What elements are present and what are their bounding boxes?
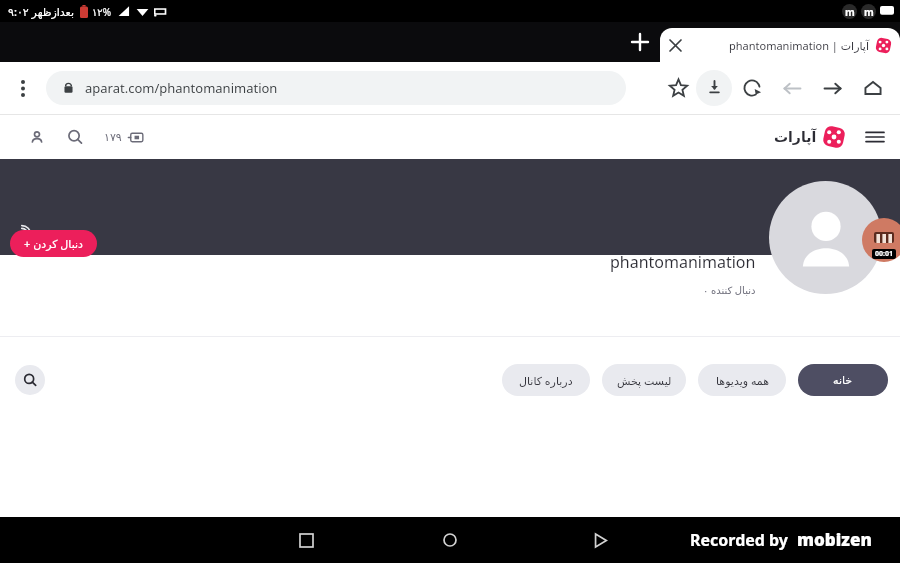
button[interactable]: aparat.com/phantomanimation [46,71,626,105]
staticText: لیست پخش [617,373,672,388]
button[interactable]: Account [22,122,52,152]
button[interactable]: ۱۷۹ [104,131,144,144]
button[interactable]: Recents [288,522,324,558]
button[interactable]: Bookmark [660,70,696,106]
staticText: m [864,5,874,19]
button[interactable]: درباره کانال [502,364,590,396]
button[interactable]: Close tab [660,28,900,62]
staticText: ۹:۰۲ بعدازظهر [8,4,74,19]
button[interactable]: همه ویدیوها [698,364,786,396]
button[interactable]: Search [60,122,90,152]
button[interactable]: Home [432,522,468,558]
staticText: آپارات [774,129,817,145]
staticText: ۱۷۹ [104,131,122,144]
button[interactable]: Mobizen recorder [862,218,900,262]
button[interactable]: Reload [732,68,772,108]
staticText: 00:01 [875,249,893,259]
button[interactable]: RSS feed [12,221,36,245]
button[interactable]: New tab [620,22,660,62]
button[interactable]: خانه [798,364,888,396]
button[interactable]: Back [772,68,812,108]
button[interactable]: Forward [812,68,852,108]
staticText: همه ویدیوها [716,373,769,388]
button[interactable]: Back [582,522,618,558]
button[interactable]: More options [0,65,46,111]
staticText: phantomanimation | آپارات [729,38,869,53]
staticText: aparat.com/phantomanimation [85,79,278,97]
staticText: + دنبال کردن [24,236,83,251]
button[interactable]: Home [852,67,894,109]
button[interactable]: Channel avatar [769,181,882,294]
staticText: درباره کانال [519,373,573,388]
button[interactable]: لیست پخش [602,364,686,396]
staticText: phantomanimation [610,251,756,273]
button[interactable]: + دنبال کردن [10,230,97,257]
button[interactable]: آپارات [774,125,846,149]
staticText: m [845,5,855,19]
staticText: ۱۲% [92,5,112,19]
button[interactable]: Download [696,70,732,106]
button[interactable]: Menu [860,122,890,152]
staticText: خانه [833,374,853,387]
staticText: mobizen [797,528,872,551]
staticText: ۰ دنبال کننده [703,283,756,297]
staticText: Recorded by [690,529,789,551]
button[interactable]: Close tab [660,30,690,60]
button[interactable]: Search channel [15,365,45,395]
